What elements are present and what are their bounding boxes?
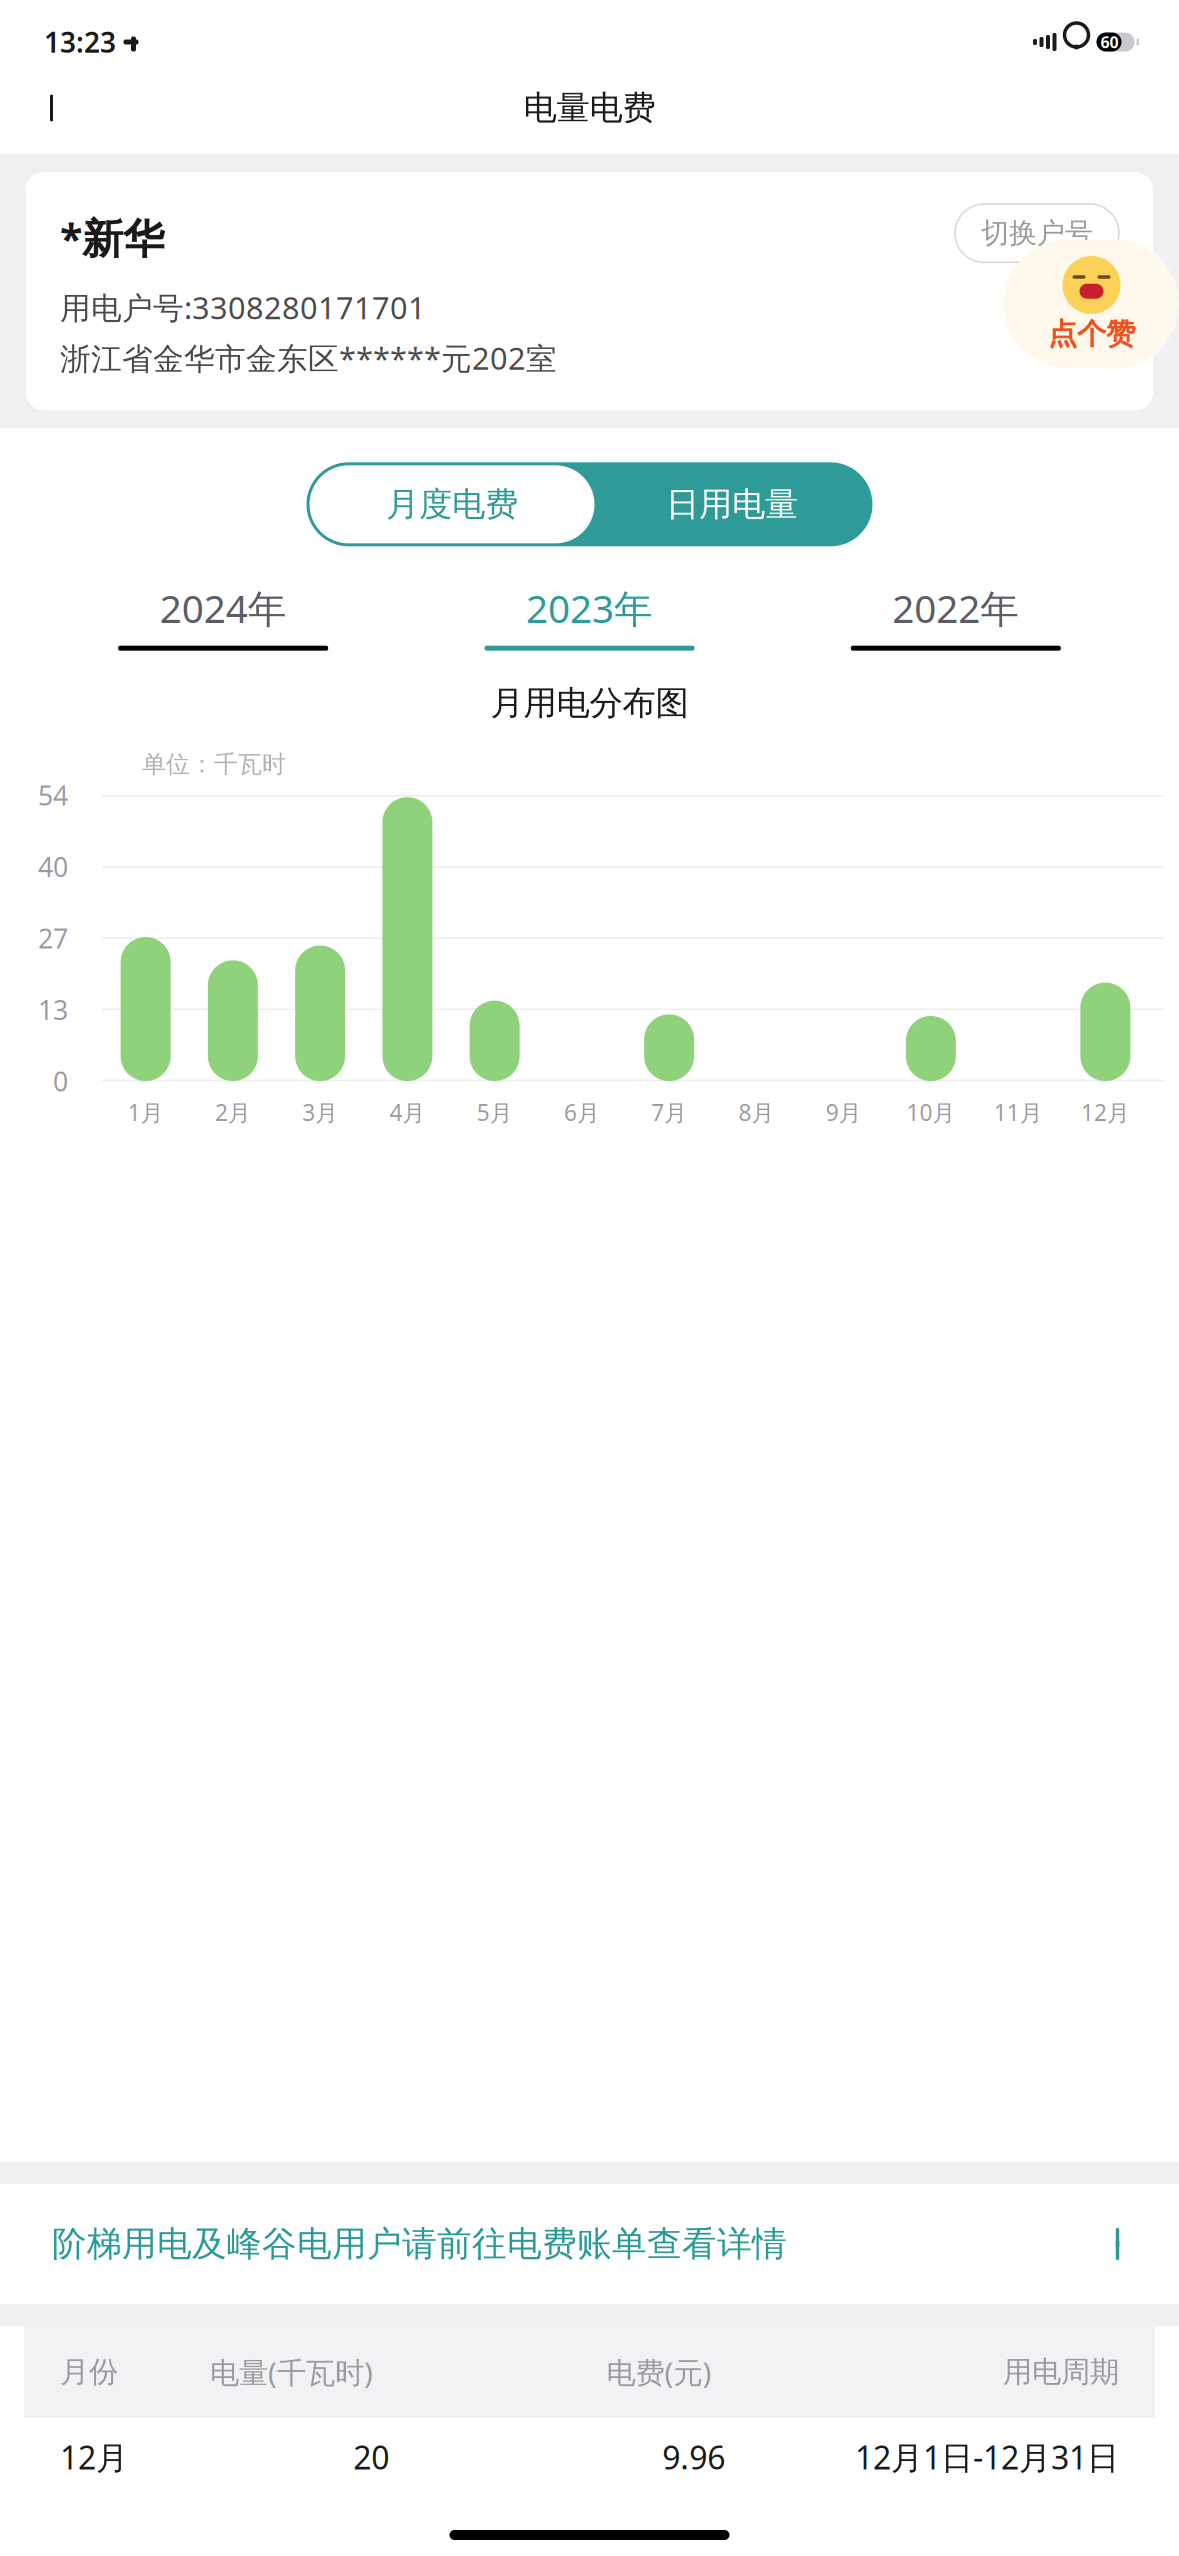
- button[interactable]: 月度电费: [309, 465, 594, 543]
- staticText: 月度电费: [386, 484, 518, 525]
- staticText: 日用电量: [666, 484, 798, 525]
- staticText: 浙江省金华市金东区******元202室: [60, 338, 557, 378]
- button[interactable]: 点个赞: [1004, 240, 1179, 368]
- staticText: 2023年: [526, 582, 653, 634]
- staticText: 点个赞: [1048, 316, 1135, 352]
- staticText: 4月: [389, 1097, 425, 1127]
- staticText: 54: [38, 777, 68, 813]
- staticText: 11月: [994, 1097, 1043, 1127]
- button[interactable]: 阶梯用电及峰谷电用户请前往电费账单查看详情: [0, 2184, 1179, 2304]
- staticText: 2022年: [892, 582, 1019, 634]
- staticText: *新华: [60, 210, 164, 265]
- staticText: 9.96: [662, 2436, 725, 2478]
- staticText: 3月: [302, 1097, 338, 1127]
- staticText: 单位：千瓦时: [142, 750, 286, 779]
- staticText: 8月: [738, 1097, 774, 1127]
- staticText: 用电周期: [1003, 2354, 1119, 2390]
- staticText: 12月: [60, 2436, 128, 2478]
- staticText: 40: [38, 849, 68, 884]
- staticText: 阶梯用电及峰谷电用户请前往电费账单查看详情: [52, 2223, 787, 2265]
- staticText: 2月: [215, 1097, 251, 1127]
- staticText: 10月: [906, 1097, 955, 1127]
- staticText: 20: [353, 2436, 389, 2478]
- button[interactable]: 2022年: [773, 576, 1139, 657]
- staticText: 12月: [1081, 1097, 1130, 1127]
- staticText: 月份: [60, 2354, 118, 2390]
- button[interactable]: 日用电量: [594, 465, 869, 543]
- staticText: 7月: [651, 1097, 687, 1127]
- staticText: 9月: [826, 1097, 862, 1127]
- staticText: 电量电费: [523, 87, 655, 128]
- staticText: 月用电分布图: [490, 683, 688, 724]
- staticText: 切换户号: [981, 216, 1093, 250]
- staticText: 27: [38, 920, 68, 956]
- staticText: 12月1日-12月31日: [855, 2436, 1119, 2478]
- button[interactable]: 2024年: [40, 576, 406, 657]
- staticText: 6月: [564, 1097, 600, 1127]
- staticText: 2024年: [160, 582, 287, 634]
- staticText: 电量(千瓦时): [210, 2352, 373, 2391]
- staticText: 13:23: [44, 23, 116, 61]
- staticText: 13: [38, 992, 68, 1027]
- button[interactable]: 切换户号: [955, 204, 1119, 262]
- staticText: 0: [53, 1063, 68, 1099]
- button[interactable]: 2023年: [406, 576, 773, 657]
- staticText: 1月: [128, 1097, 164, 1127]
- staticText: 电费(元): [606, 2352, 711, 2391]
- staticText: 5月: [477, 1097, 513, 1127]
- staticText: 60: [1100, 31, 1118, 53]
- button[interactable]: 返回: [26, 80, 82, 136]
- staticText: 用电户号:3308280171701: [60, 287, 426, 328]
